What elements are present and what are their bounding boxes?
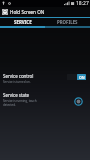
staticText: Service state xyxy=(3,92,30,98)
staticText: Service is running, touch detected. xyxy=(3,99,37,107)
button[interactable]: Service toggle xyxy=(67,74,86,80)
button[interactable]: Service state xyxy=(0,90,90,112)
button[interactable]: PROFILES xyxy=(45,18,90,26)
staticText: 18:27 xyxy=(76,0,89,7)
button[interactable]: Service state xyxy=(73,96,84,107)
staticText: ON xyxy=(79,75,85,80)
staticText: PROFILES xyxy=(57,19,78,25)
staticText: Hold Screen ON xyxy=(10,9,45,15)
staticText: Service control xyxy=(3,73,34,79)
button[interactable]: Service control xyxy=(0,70,90,90)
staticText: SERVICE xyxy=(14,19,32,25)
staticText: Service is turned on. xyxy=(3,80,31,84)
button[interactable]: SERVICE xyxy=(0,18,45,26)
